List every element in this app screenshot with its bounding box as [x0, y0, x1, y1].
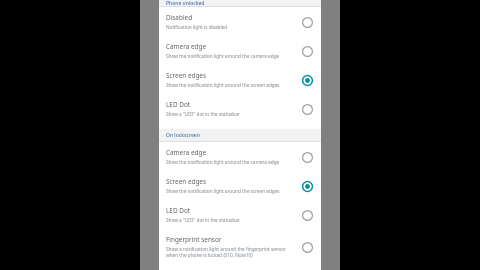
staticText: Show the notification light around the s…	[166, 188, 280, 194]
button[interactable]: Not selected	[299, 14, 315, 30]
staticText: Show the notification light around the c…	[166, 159, 280, 165]
button[interactable]: Not selected	[299, 239, 315, 255]
staticText: Phone unlocked	[166, 0, 205, 7]
button[interactable]: Selected	[299, 72, 315, 88]
button[interactable]: Camera edge	[159, 36, 321, 65]
button[interactable]: Screen edges	[159, 65, 321, 94]
button[interactable]: Fingerprint sensor	[159, 229, 321, 264]
staticText: Camera edge	[166, 148, 207, 157]
staticText: Show the notification light around the c…	[166, 53, 280, 59]
button[interactable]: Not selected	[299, 207, 315, 223]
button[interactable]: LED Dot	[159, 200, 321, 229]
staticText: Show a notification light around the fin…	[166, 246, 293, 258]
staticText: Notification light is disabled	[166, 24, 228, 30]
staticText: Show a "LED" dot in the statusbar	[166, 217, 240, 223]
button[interactable]: Not selected	[299, 101, 315, 117]
staticText: Show the notification light around the s…	[166, 82, 280, 88]
staticText: LED Dot	[166, 206, 191, 215]
button[interactable]: Not selected	[299, 149, 315, 165]
button[interactable]: Screen edges	[159, 171, 321, 200]
staticText: Fingerprint sensor	[166, 235, 222, 244]
staticText: On lockscreen	[166, 132, 200, 139]
staticText: Screen edges	[166, 71, 207, 80]
staticText: Screen edges	[166, 177, 207, 186]
button[interactable]: LED Dot	[159, 94, 321, 123]
button[interactable]: Selected	[299, 178, 315, 194]
staticText: LED Dot	[166, 100, 191, 109]
button[interactable]: Not selected	[299, 43, 315, 59]
staticText: Show a "LED" dot in the statusbar	[166, 111, 240, 117]
button[interactable]: Disabled	[159, 7, 321, 36]
staticText: Camera edge	[166, 42, 207, 51]
staticText: Disabled	[166, 13, 193, 22]
button[interactable]: Camera edge	[159, 142, 321, 171]
